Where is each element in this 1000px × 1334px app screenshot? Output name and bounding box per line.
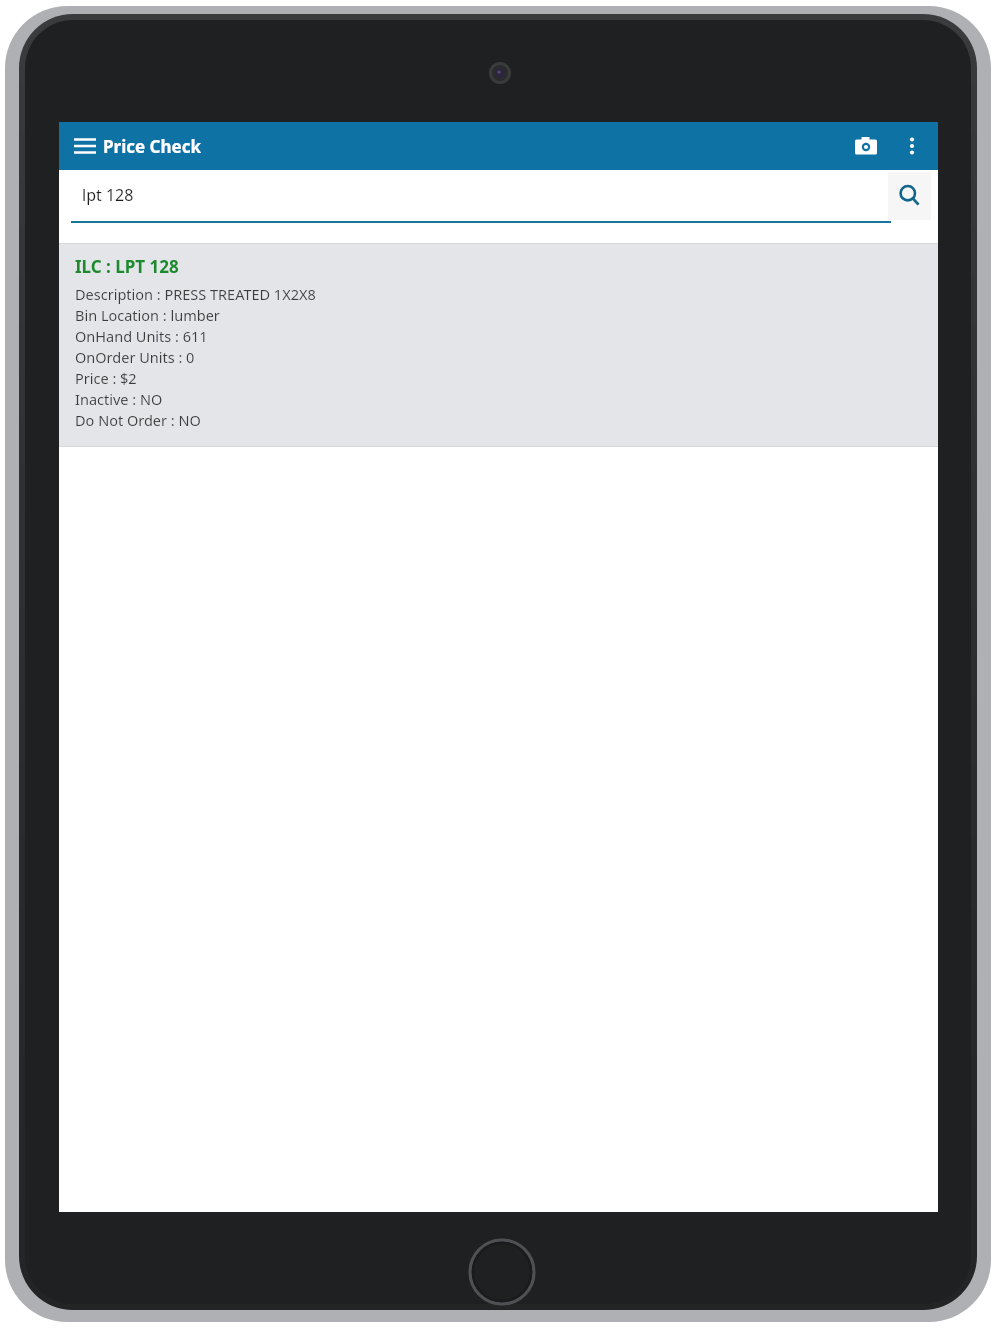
button[interactable]: Scan barcode with camera <box>842 122 890 170</box>
button[interactable]: Search <box>888 172 931 220</box>
staticText: lpt 128 <box>82 184 134 206</box>
staticText: Description : PRESS TREATED 1X2X8 <box>75 284 316 304</box>
button[interactable]: Open navigation menu <box>63 124 107 168</box>
staticText: OnOrder Units : 0 <box>75 347 195 367</box>
staticText: OnHand Units : 611 <box>75 326 208 346</box>
button[interactable]: lpt 128 <box>71 170 891 223</box>
staticText: Price : $2 <box>75 368 137 388</box>
staticText: Bin Location : lumber <box>75 305 220 325</box>
staticText: Do Not Order : NO <box>75 410 201 430</box>
button[interactable]: More options <box>890 124 934 168</box>
staticText: ILC : LPT 128 <box>75 255 179 278</box>
staticText: Price Check <box>103 135 202 158</box>
button[interactable]: ILC : LPT 128 <box>59 243 938 447</box>
staticText: Inactive : NO <box>75 389 163 409</box>
